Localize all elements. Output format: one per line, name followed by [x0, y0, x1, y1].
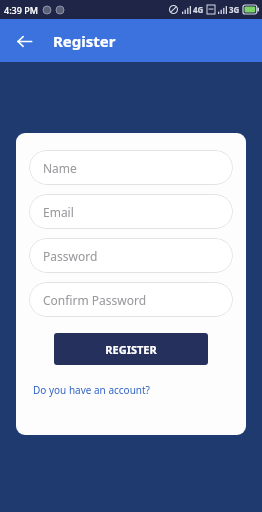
staticText: Password — [43, 248, 98, 264]
staticText: Name — [43, 160, 77, 176]
button[interactable]: Confirm Password — [29, 282, 233, 317]
staticText: Register — [53, 31, 116, 51]
staticText: Confirm Password — [43, 292, 147, 308]
button[interactable]: Back — [9, 26, 39, 56]
button[interactable]: Email — [29, 194, 233, 229]
staticText: 4G — [193, 4, 204, 15]
button[interactable]: REGISTER — [54, 333, 208, 365]
staticText: Email — [43, 204, 74, 220]
staticText: REGISTER — [105, 342, 157, 357]
staticText: 3G — [229, 4, 240, 15]
staticText: Do you have an account? — [33, 383, 150, 397]
staticText: 4:39 PM — [4, 4, 38, 16]
button[interactable]: Do you have an account? — [33, 383, 150, 397]
button[interactable]: Password — [29, 238, 233, 273]
button[interactable]: Name — [29, 150, 233, 185]
